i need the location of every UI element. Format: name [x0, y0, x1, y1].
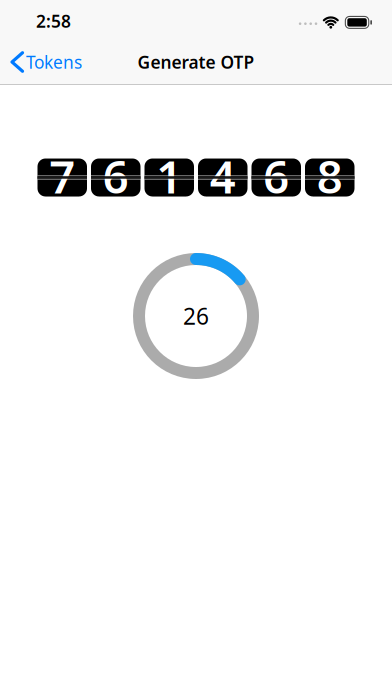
- staticText: Tokens: [26, 50, 82, 73]
- staticText: 6: [263, 146, 289, 206]
- staticText: 26: [183, 301, 209, 331]
- staticText: 6: [103, 146, 129, 206]
- staticText: 8: [317, 146, 343, 206]
- staticText: 4: [210, 146, 236, 206]
- staticText: 1: [156, 146, 182, 206]
- staticText: 2:58: [36, 9, 71, 32]
- staticText: 7: [49, 146, 75, 206]
- staticText: Generate OTP: [137, 50, 254, 73]
- button[interactable]: Tokens: [0, 50, 82, 73]
